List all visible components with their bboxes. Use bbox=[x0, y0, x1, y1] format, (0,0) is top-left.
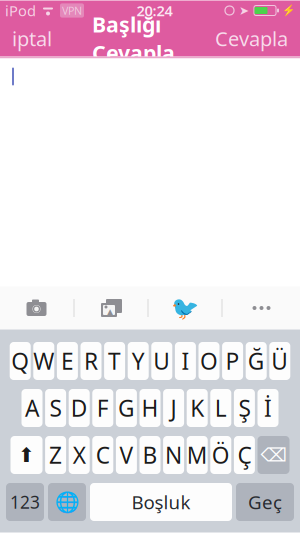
staticText: 🌐 bbox=[54, 491, 79, 513]
staticText: L bbox=[215, 393, 227, 423]
staticText: J bbox=[171, 393, 177, 423]
staticText: M bbox=[187, 440, 208, 470]
button[interactable]: More bbox=[222, 287, 300, 329]
staticText: C bbox=[96, 440, 110, 470]
staticText: U bbox=[153, 346, 170, 376]
staticText: B bbox=[142, 440, 157, 470]
button[interactable]: Z bbox=[45, 436, 66, 474]
staticText: O bbox=[200, 346, 218, 376]
staticText: E bbox=[61, 346, 74, 376]
button[interactable]: Geç bbox=[236, 483, 294, 521]
staticText: D bbox=[71, 393, 88, 423]
button[interactable]: Twitter bbox=[148, 287, 221, 329]
button[interactable]: K bbox=[187, 389, 208, 427]
button[interactable]: 123 bbox=[6, 483, 44, 521]
button[interactable]: Shift bbox=[10, 436, 42, 474]
button[interactable]: Y bbox=[128, 342, 149, 380]
button[interactable]: Cevapla bbox=[207, 20, 296, 56]
button[interactable]: X bbox=[69, 436, 90, 474]
button[interactable]: V bbox=[116, 436, 137, 474]
button[interactable]: Ğ bbox=[246, 342, 267, 380]
button[interactable]: T bbox=[104, 342, 125, 380]
button[interactable]: D bbox=[69, 389, 90, 427]
staticText: N bbox=[165, 440, 182, 470]
button[interactable]: G bbox=[116, 389, 137, 427]
staticText: ➤ bbox=[239, 4, 249, 17]
button[interactable]: S bbox=[45, 389, 66, 427]
button[interactable]: W bbox=[33, 342, 54, 380]
staticText: X bbox=[73, 440, 86, 470]
staticText: Geç bbox=[248, 490, 282, 514]
button[interactable]: F bbox=[92, 389, 113, 427]
button[interactable]: L bbox=[210, 389, 231, 427]
staticText: Ö bbox=[212, 440, 230, 470]
button[interactable]: N bbox=[163, 436, 184, 474]
button[interactable]: P bbox=[222, 342, 243, 380]
staticText: Z bbox=[49, 440, 62, 470]
staticText: T bbox=[108, 346, 121, 376]
button[interactable]: iptal bbox=[4, 20, 60, 56]
staticText: P bbox=[226, 346, 240, 376]
staticText: Cevapla bbox=[215, 25, 288, 52]
staticText: İ bbox=[264, 393, 272, 423]
staticText: K bbox=[190, 393, 204, 423]
staticText: 🐦 bbox=[171, 295, 199, 321]
staticText: I bbox=[181, 346, 189, 376]
staticText: V bbox=[119, 440, 133, 470]
button[interactable]: O bbox=[198, 342, 219, 380]
staticText: ⌫ bbox=[260, 444, 286, 466]
staticText: Ü bbox=[271, 346, 288, 376]
staticText: 20:24 bbox=[136, 1, 172, 20]
staticText: A bbox=[25, 393, 39, 423]
button[interactable]: I bbox=[175, 342, 196, 380]
staticText: VPN bbox=[62, 3, 82, 18]
staticText: F bbox=[97, 393, 109, 423]
staticText: ⬆ bbox=[18, 444, 35, 466]
staticText: S bbox=[50, 393, 62, 423]
button[interactable]: İ bbox=[257, 389, 278, 427]
staticText: W bbox=[33, 346, 54, 376]
button[interactable]: E bbox=[57, 342, 78, 380]
staticText: G bbox=[118, 393, 135, 423]
staticText: Boşluk bbox=[131, 490, 190, 514]
staticText: Başlığı Cevapla bbox=[92, 10, 175, 67]
button[interactable]: C bbox=[92, 436, 113, 474]
staticText: R bbox=[84, 346, 98, 376]
staticText: Q bbox=[11, 346, 29, 376]
staticText: iptal bbox=[12, 25, 52, 52]
button[interactable]: Ü bbox=[269, 342, 290, 380]
button[interactable]: Camera bbox=[0, 287, 73, 329]
staticText: ⚡ bbox=[282, 4, 295, 17]
staticText: 123 bbox=[10, 490, 40, 513]
staticText: Ğ bbox=[248, 346, 265, 376]
button[interactable]: R bbox=[80, 342, 101, 380]
button[interactable]: M bbox=[187, 436, 208, 474]
staticText: Ş bbox=[238, 393, 250, 423]
button[interactable]: B bbox=[139, 436, 160, 474]
button[interactable]: Delete bbox=[257, 436, 289, 474]
staticText: ▲ bbox=[106, 307, 113, 317]
staticText: Ç bbox=[237, 440, 251, 470]
button[interactable]: Boşluk bbox=[90, 483, 232, 521]
button[interactable]: Q bbox=[10, 342, 31, 380]
button[interactable]: Photo Library bbox=[74, 287, 147, 329]
button[interactable]: U bbox=[151, 342, 172, 380]
button[interactable]: A bbox=[21, 389, 42, 427]
button[interactable]: J bbox=[163, 389, 184, 427]
button[interactable]: Next keyboard bbox=[48, 483, 86, 521]
button[interactable]: Ş bbox=[234, 389, 255, 427]
button[interactable]: H bbox=[139, 389, 160, 427]
button[interactable]: Ö bbox=[210, 436, 231, 474]
button[interactable]: Ç bbox=[234, 436, 255, 474]
staticText: iPod bbox=[5, 1, 36, 20]
staticText: H bbox=[141, 393, 158, 423]
staticText: Y bbox=[132, 346, 145, 376]
